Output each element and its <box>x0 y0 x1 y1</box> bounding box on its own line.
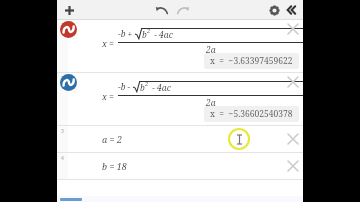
staticText: x = −5.36602540378 <box>210 108 293 120</box>
staticText: 1 <box>61 22 64 29</box>
button[interactable]: Delete expression <box>284 20 302 38</box>
button[interactable]: 2 <box>57 73 303 125</box>
staticText: −b − <box>118 81 131 93</box>
staticText: 2 <box>145 80 149 87</box>
staticText: x <box>102 90 107 102</box>
staticText: b <box>142 29 147 41</box>
button[interactable]: Expression colour <box>60 21 77 38</box>
button[interactable]: Expression colour <box>60 74 77 91</box>
button[interactable]: Delete expression <box>284 73 302 91</box>
button[interactable]: Undo <box>152 1 170 19</box>
staticText: 2 <box>147 27 151 34</box>
button[interactable]: Redo <box>174 1 192 19</box>
button[interactable]: Delete expression <box>284 157 302 175</box>
button[interactable]: Collapse panel <box>283 1 301 19</box>
staticText: − 4ac <box>150 82 171 94</box>
button[interactable]: x = −5.36602540378 <box>204 106 299 122</box>
staticText: 2a <box>206 44 216 56</box>
staticText: b <box>140 82 145 94</box>
staticText: = <box>109 90 115 102</box>
button[interactable]: 4 <box>57 153 303 179</box>
button[interactable]: Add expression <box>60 1 78 19</box>
staticText: x <box>102 37 107 49</box>
staticText: b = 18 <box>102 160 127 172</box>
staticText: x = −3.63397459622 <box>210 55 293 67</box>
button[interactable]: x = −3.63397459622 <box>204 53 299 69</box>
staticText: 2a <box>206 97 216 109</box>
staticText: − 4ac <box>152 29 173 41</box>
staticText: 2 <box>61 75 64 82</box>
staticText: 3 <box>61 128 64 135</box>
staticText: 4 <box>61 155 64 162</box>
staticText: −b + <box>118 28 133 40</box>
button[interactable]: 3 <box>57 126 303 152</box>
button[interactable]: Settings <box>265 1 283 19</box>
button[interactable]: Delete expression <box>284 130 302 148</box>
staticText: a = 2 <box>102 133 122 145</box>
staticText: = <box>109 37 115 49</box>
button[interactable]: 1 <box>57 20 303 72</box>
